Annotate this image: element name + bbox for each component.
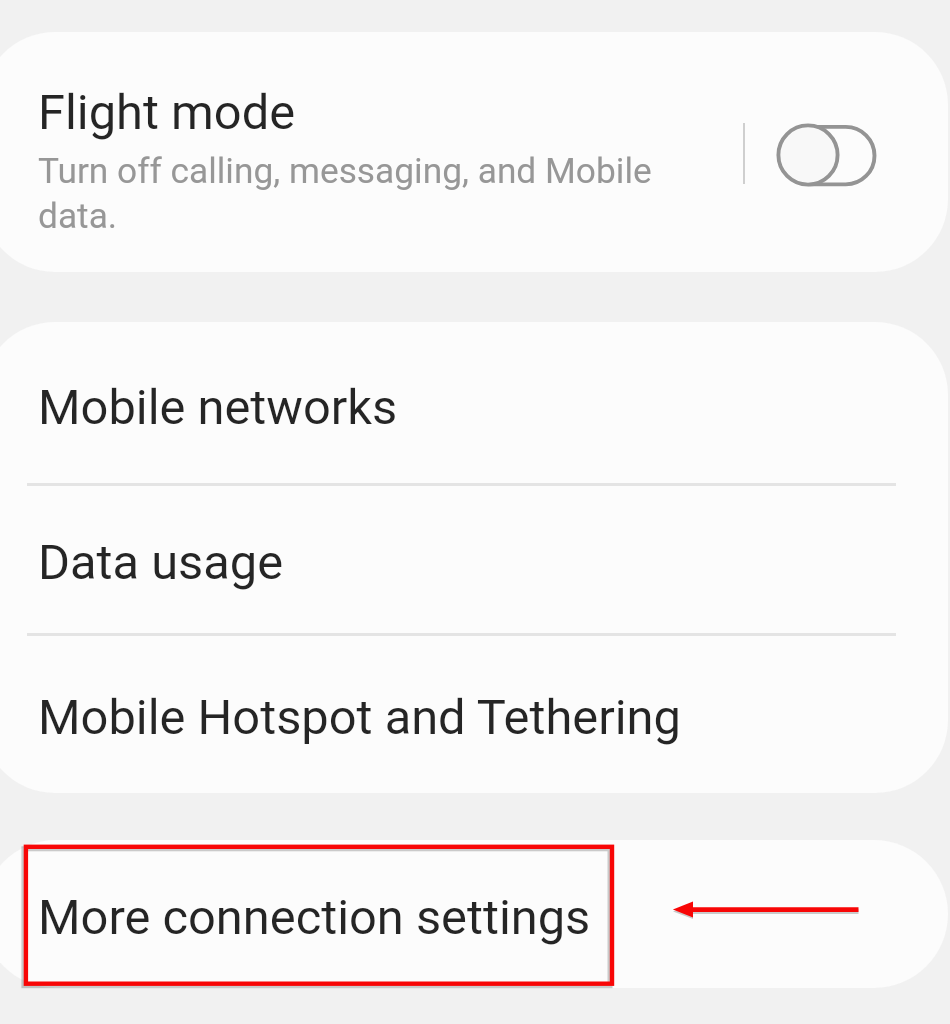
staticText: Mobile Hotspot and Tethering (38, 689, 681, 746)
button[interactable]: Data usage (0, 486, 948, 633)
button[interactable]: Flight mode switch, off (777, 121, 881, 189)
staticText: Mobile networks (38, 379, 398, 436)
staticText: Flight mode (38, 84, 296, 141)
button[interactable]: Mobile networks (0, 322, 948, 483)
staticText: More connection settings (38, 889, 591, 946)
staticText: Data usage (38, 534, 284, 591)
button[interactable]: More connection settings (0, 840, 948, 988)
button[interactable]: Flight mode (0, 32, 948, 272)
staticText: Turn off calling, messaging, and Mobile … (38, 147, 698, 237)
button[interactable]: Mobile Hotspot and Tethering (0, 636, 948, 793)
